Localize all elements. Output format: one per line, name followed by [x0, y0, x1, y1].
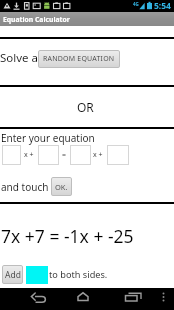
button[interactable]: Back — [22, 288, 56, 310]
button[interactable]: More options — [157, 288, 171, 310]
staticText: Enter your equation — [1, 131, 95, 145]
button[interactable] — [2, 145, 21, 165]
button[interactable] — [70, 145, 91, 165]
staticText: x + — [24, 150, 34, 160]
staticText: to both sides. — [49, 268, 108, 281]
staticText: 7x +7 = -1x + -25 — [1, 224, 134, 248]
staticText: Solve a — [0, 50, 39, 66]
staticText: 5:54 — [154, 0, 171, 12]
button[interactable]: Add — [2, 265, 23, 284]
staticText: x + — [93, 150, 103, 160]
staticText: Equation Calculator — [3, 15, 70, 24]
button[interactable]: RANDOM EQUATION — [38, 50, 120, 68]
staticText: Add — [5, 269, 21, 281]
button[interactable] — [38, 145, 59, 165]
button[interactable] — [107, 145, 129, 165]
staticText: RANDOM EQUATION — [43, 54, 115, 64]
button[interactable]: OK. — [51, 177, 72, 196]
staticText: and touch — [1, 180, 49, 194]
staticText: 4G — [133, 1, 139, 7]
staticText: = — [62, 150, 67, 160]
staticText: OK. — [55, 182, 68, 192]
button[interactable]: Recent apps — [120, 288, 150, 310]
staticText: OR — [77, 99, 94, 115]
button[interactable]: Home — [70, 288, 96, 310]
